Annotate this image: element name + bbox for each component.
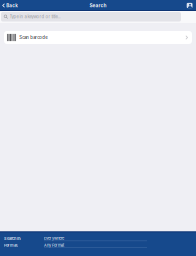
staticText: Type in a keyword or title...: [10, 14, 61, 19]
staticText: Search in:: [4, 236, 21, 241]
staticText: Everywhere: [44, 236, 64, 241]
button[interactable]: Account: [187, 0, 196, 11]
staticText: Format:: [4, 243, 18, 248]
button[interactable]: Type in a keyword or title...: [0, 11, 196, 23]
button[interactable]: Back: [0, 0, 22, 11]
staticText: Back: [6, 3, 18, 8]
button[interactable]: Search in:: [0, 235, 196, 242]
staticText: Any Format: [44, 243, 64, 248]
button[interactable]: Format:: [0, 242, 196, 249]
button[interactable]: Scan barcode: [0, 31, 196, 44]
staticText: Search: [89, 3, 106, 8]
staticText: Scan barcode: [19, 35, 47, 40]
